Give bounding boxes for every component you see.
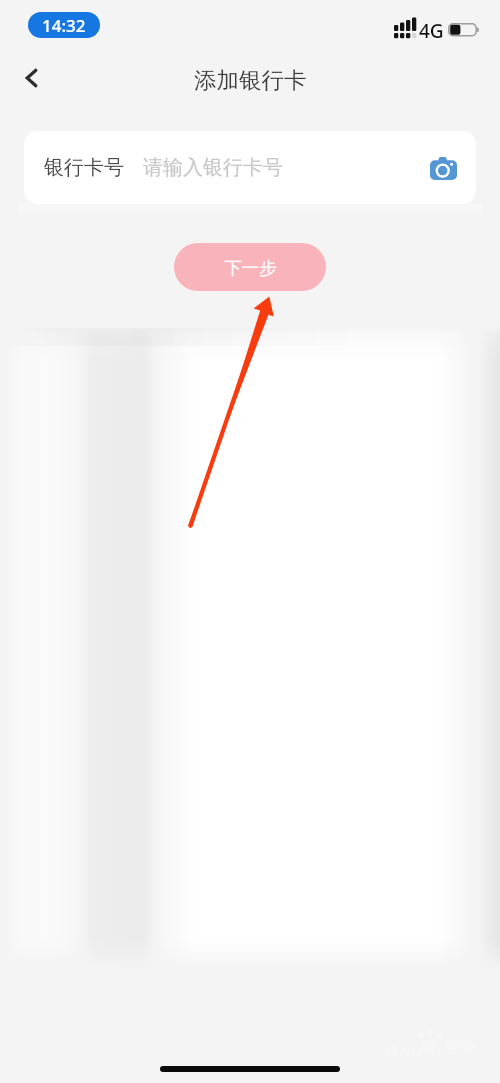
staticText: 4G xyxy=(419,18,444,44)
button[interactable]: Scan bank card xyxy=(425,150,461,186)
button[interactable]: 下一步 xyxy=(174,243,326,291)
staticText: 添加银行卡 xyxy=(194,66,307,94)
button[interactable]: Back xyxy=(8,54,56,102)
staticText: 14:32 xyxy=(42,14,86,37)
button[interactable]: 银行卡号 xyxy=(24,131,476,204)
staticText: 银行卡号 xyxy=(44,155,124,180)
staticText: 下一步 xyxy=(224,257,277,279)
staticText: 请输入银行卡号 xyxy=(143,155,283,180)
